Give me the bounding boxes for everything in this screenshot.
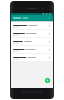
button[interactable]: Row action (11, 30, 53, 37)
button[interactable]: Row action (48, 32, 51, 35)
button[interactable]: Row action (48, 24, 51, 27)
button[interactable]: Row action (11, 46, 53, 53)
button[interactable]: Row action (48, 56, 51, 59)
button[interactable]: Row action (11, 22, 53, 29)
button[interactable]: Add (45, 78, 50, 83)
button[interactable]: More options (47, 16, 51, 20)
button[interactable]: Row action (48, 48, 51, 51)
button[interactable]: Row action (48, 40, 51, 43)
button[interactable]: Row action (11, 38, 53, 45)
button[interactable]: Row action (11, 54, 53, 61)
